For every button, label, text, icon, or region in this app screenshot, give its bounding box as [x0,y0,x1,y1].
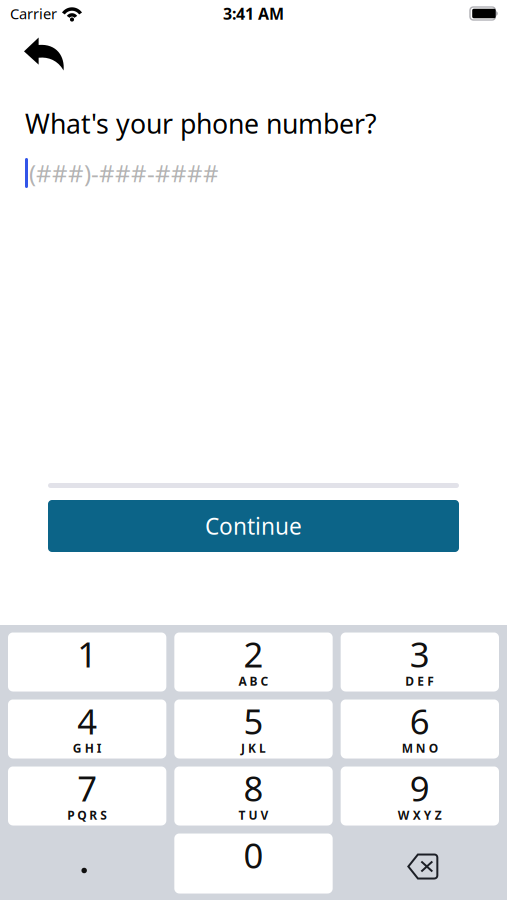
staticText: G H I [73,740,102,756]
button[interactable]: 0 [174,833,333,893]
button[interactable]: 7 [8,766,166,825]
staticText: M N O [402,740,438,756]
button[interactable]: 6 [341,699,499,758]
staticText: 2 [243,631,263,677]
staticText: (###)-###-#### [29,157,219,189]
button[interactable]: 8 [174,766,333,825]
staticText: 0 [243,832,263,878]
staticText: 1 [77,631,97,677]
button[interactable]: Back [0,25,79,80]
button[interactable]: 5 [174,699,333,758]
button[interactable]: 1 [8,632,166,691]
staticText: 8 [243,765,263,811]
staticText: T U V [238,807,268,823]
button[interactable]: 2 [174,632,333,691]
button[interactable]: 4 [8,699,166,758]
staticText: 3:41 AM [223,3,284,24]
staticText: J K L [241,740,266,756]
staticText: 7 [77,765,97,811]
button[interactable]: Continue [48,500,459,552]
staticText: 6 [410,698,430,744]
staticText: Continue [205,511,302,541]
button[interactable]: 3 [341,632,499,691]
staticText: 3 [410,631,430,677]
staticText: W X Y Z [398,807,442,823]
staticText: 4 [77,698,97,744]
staticText: 5 [243,698,263,744]
staticText: 9 [410,765,430,811]
staticText: P Q R S [67,807,107,823]
staticText: Carrier [10,4,57,23]
button[interactable]: Delete [341,833,499,893]
staticText: D E F [405,673,434,689]
staticText: A B C [238,673,268,689]
button[interactable]: 9 [341,766,499,825]
staticText: What's your phone number? [25,106,377,141]
button[interactable]: Period [8,833,166,893]
